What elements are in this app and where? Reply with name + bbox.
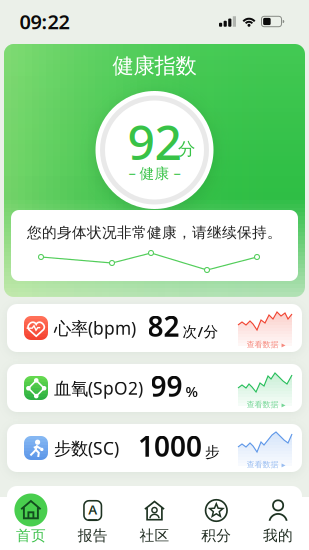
staticText: 首页: [16, 526, 46, 544]
staticText: 82: [147, 307, 179, 345]
staticText: 次/分: [182, 322, 218, 341]
staticText: 09:22: [19, 8, 69, 35]
staticText: 分: [178, 138, 195, 160]
staticText: 查看数据 ▸: [246, 400, 285, 409]
staticText: – 健康 –: [128, 163, 180, 183]
staticText: 查看数据 ▸: [246, 460, 285, 469]
staticText: %: [185, 382, 197, 401]
staticText: 查看数据 ▸: [246, 340, 285, 349]
staticText: A: [88, 500, 97, 518]
button[interactable]: 积分: [186, 497, 247, 550]
staticText: 报告: [78, 526, 108, 544]
button[interactable]: 血氧(SpO2): [7, 364, 302, 412]
button[interactable]: 社区: [124, 497, 185, 550]
button[interactable]: 我的: [248, 497, 309, 550]
staticText: 健康指数: [112, 53, 196, 79]
staticText: 我的: [263, 526, 293, 544]
button[interactable]: A: [62, 497, 123, 550]
staticText: 社区: [139, 526, 169, 544]
staticText: 步数(SC): [54, 436, 119, 459]
staticText: 您的身体状况非常健康，请继续保持。: [27, 223, 282, 241]
staticText: 积分: [201, 526, 231, 544]
button[interactable]: 心率(bpm): [7, 304, 302, 352]
staticText: 99: [150, 367, 182, 405]
button[interactable]: 首页: [0, 497, 61, 550]
staticText: 血氧(SpO2): [54, 376, 143, 399]
staticText: 1000: [138, 427, 202, 465]
staticText: 92: [127, 110, 181, 173]
button[interactable]: 步数(SC): [7, 424, 302, 472]
staticText: 心率(bpm): [54, 316, 136, 339]
staticText: 步: [205, 443, 220, 461]
